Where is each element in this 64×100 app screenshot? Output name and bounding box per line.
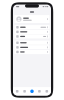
button[interactable]: Library [21,88,28,94]
button[interactable]: Home [28,88,36,94]
button[interactable] [14,50,49,54]
button[interactable] [14,34,49,39]
button[interactable] [14,15,49,23]
button[interactable] [14,45,49,49]
button[interactable] [14,41,49,45]
button[interactable]: Settings [43,88,50,94]
button[interactable]: Search [13,88,21,94]
button[interactable] [14,25,49,29]
button[interactable]: Activity [36,88,43,94]
button[interactable] [14,30,49,34]
